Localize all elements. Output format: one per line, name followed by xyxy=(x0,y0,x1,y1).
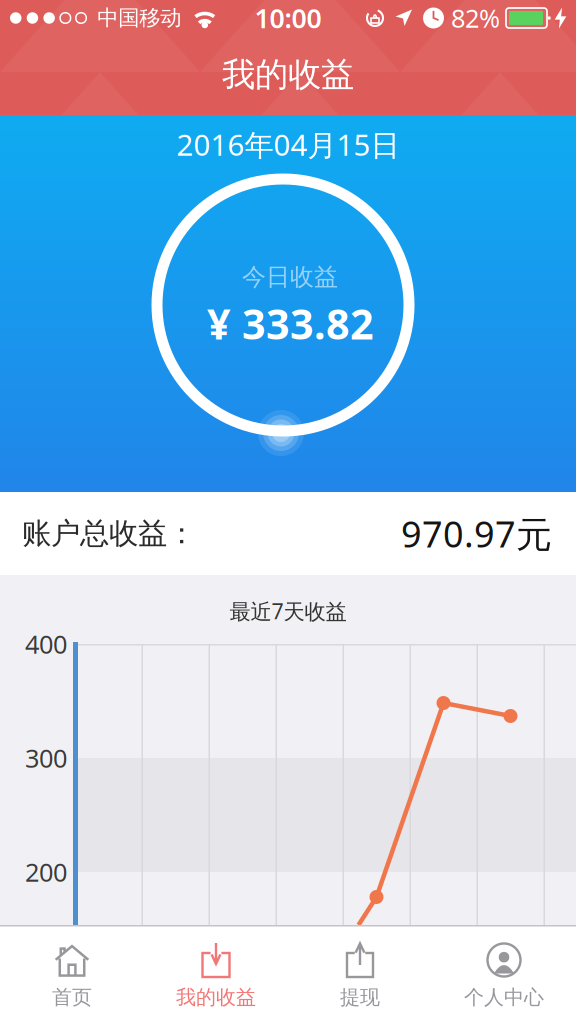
staticText: 个人中心 xyxy=(464,985,544,1010)
staticText: 200 xyxy=(25,855,67,889)
button[interactable]: 提现 xyxy=(288,942,432,1010)
staticText: 2016年04月15日 xyxy=(176,125,399,164)
staticText: 最近7天收益 xyxy=(229,597,346,625)
button[interactable]: 首页 xyxy=(0,942,144,1010)
staticText: 10:00 xyxy=(254,0,321,36)
staticText: 我的收益 xyxy=(222,54,354,95)
button[interactable]: 我的收益 xyxy=(144,942,288,1010)
staticText: 82% xyxy=(451,1,500,35)
staticText: ¥ 333.82 xyxy=(207,296,374,351)
staticText: 我的收益 xyxy=(176,985,256,1010)
staticText: 账户总收益： xyxy=(22,515,196,551)
staticText: 400 xyxy=(25,627,67,661)
staticText: 今日收益 xyxy=(242,262,338,292)
staticText: 首页 xyxy=(52,985,92,1010)
staticText: 提现 xyxy=(340,985,380,1010)
staticText: 300 xyxy=(25,741,67,775)
button[interactable]: 个人中心 xyxy=(432,942,576,1010)
staticText: 970.97元 xyxy=(401,510,552,557)
staticText: 中国移动 xyxy=(97,5,181,31)
